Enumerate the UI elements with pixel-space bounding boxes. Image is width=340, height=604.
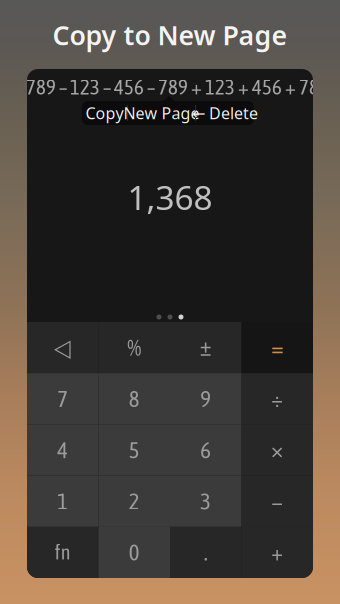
staticText: ÷ — [271, 386, 283, 412]
button[interactable]: ± — [170, 322, 241, 373]
staticText: 1 — [57, 488, 68, 514]
staticText: Copy — [85, 102, 123, 124]
button[interactable]: 9 — [170, 373, 241, 424]
button[interactable]: − — [241, 476, 313, 527]
button[interactable]: fn — [27, 527, 98, 578]
button[interactable]: New Page — [128, 101, 195, 125]
button[interactable]: + — [241, 527, 313, 578]
button[interactable]: × — [241, 424, 313, 476]
staticText: New Page — [123, 102, 199, 124]
staticText: + — [271, 539, 283, 565]
staticText: 5 — [129, 437, 140, 463]
staticText: ← Delete — [192, 102, 258, 124]
staticText: 8 — [129, 386, 140, 412]
staticText: × — [271, 437, 283, 463]
button[interactable]: 7 — [27, 373, 98, 424]
staticText: − — [271, 488, 283, 514]
staticText: . — [204, 539, 208, 565]
button[interactable]: Copy — [82, 101, 127, 125]
staticText: 7 — [57, 386, 68, 412]
button[interactable]: 0 — [98, 527, 170, 578]
button[interactable]: 4 — [27, 424, 98, 476]
staticText: 6 — [200, 437, 211, 463]
staticText: 0 — [129, 539, 140, 565]
button[interactable]: 6 — [170, 424, 241, 476]
staticText: ± — [200, 335, 212, 361]
staticText: = — [271, 334, 283, 361]
staticText: 1,368 — [127, 175, 212, 219]
staticText: 9 — [200, 386, 211, 412]
button[interactable]: ◁ — [27, 322, 98, 373]
staticText: % — [127, 335, 141, 361]
staticText: Copy to New Page — [52, 17, 287, 53]
button[interactable]: 8 — [98, 373, 170, 424]
button[interactable]: 2 — [98, 476, 170, 527]
staticText: ◁ — [54, 334, 71, 361]
staticText: fn — [55, 541, 71, 564]
staticText: 2 — [129, 488, 140, 514]
button[interactable]: ÷ — [241, 373, 313, 424]
button[interactable]: % — [98, 322, 170, 373]
button[interactable]: . — [170, 527, 241, 578]
button[interactable]: ← Delete — [196, 101, 254, 125]
button[interactable]: 1 — [27, 476, 98, 527]
button[interactable]: 3 — [170, 476, 241, 527]
button[interactable]: 5 — [98, 424, 170, 476]
button[interactable]: = — [241, 322, 313, 373]
staticText: 4 — [57, 437, 68, 463]
staticText: 789 – 123 – 456 – 789 + 123 + 456 + 789 — [26, 75, 329, 99]
staticText: 3 — [200, 488, 211, 514]
